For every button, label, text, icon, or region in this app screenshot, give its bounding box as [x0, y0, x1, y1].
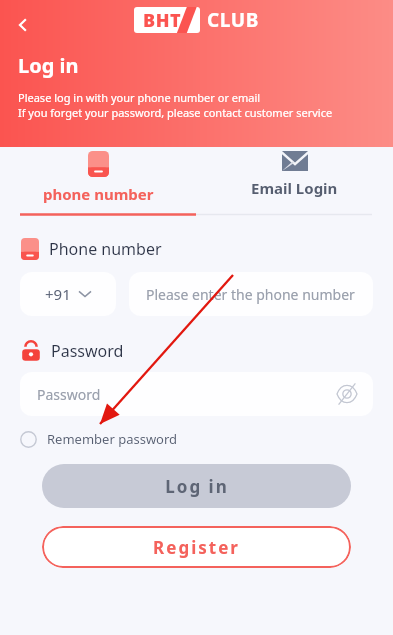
button[interactable]: phone number: [0, 151, 196, 204]
staticText: Password: [51, 340, 124, 362]
staticText: Remember password: [47, 430, 178, 448]
button[interactable]: Back: [6, 8, 40, 42]
staticText: Phone number: [49, 238, 162, 260]
button[interactable]: Please enter the phone number: [129, 272, 373, 316]
staticText: Password: [37, 385, 335, 404]
staticText: Email Login: [251, 178, 338, 198]
staticText: phone number: [43, 184, 154, 204]
staticText: Please enter the phone number: [146, 285, 355, 304]
button[interactable]: +91: [20, 272, 116, 316]
staticText: BHT: [143, 8, 182, 33]
button[interactable]: Log in: [42, 464, 351, 508]
staticText: Log in: [18, 52, 79, 79]
staticText: Register: [153, 536, 240, 559]
staticText: Please log in with your phone number or …: [18, 90, 261, 105]
button[interactable]: Register: [42, 526, 351, 568]
button[interactable]: Show password: [335, 382, 359, 406]
staticText: If you forget your password, please cont…: [18, 105, 333, 120]
staticText: Log in: [165, 475, 229, 498]
button[interactable]: Remember password: [20, 430, 178, 448]
staticText: +91: [45, 284, 71, 304]
button[interactable]: Email Login: [196, 151, 393, 198]
button[interactable]: Password: [20, 372, 373, 416]
staticText: CLUB: [207, 7, 260, 33]
